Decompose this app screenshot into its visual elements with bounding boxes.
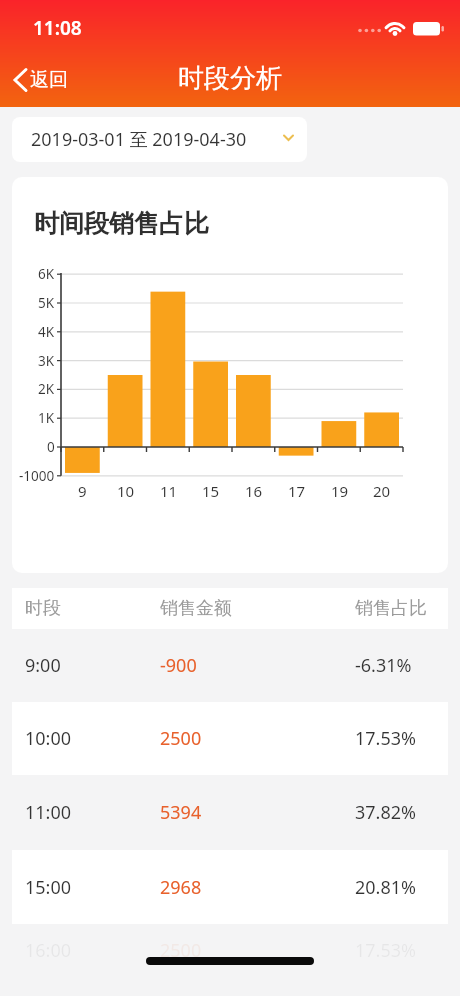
staticText: 11: [160, 481, 178, 501]
staticText: 10:00: [25, 726, 72, 751]
staticText: 17.53%: [355, 938, 416, 963]
button[interactable]: [12, 702, 448, 775]
staticText: 15:00: [25, 875, 72, 900]
staticText: 时段: [25, 597, 61, 620]
staticText: 37.82%: [355, 800, 416, 825]
staticText: 时间段销售占比: [34, 208, 209, 239]
staticText: 2500: [160, 726, 202, 751]
staticText: 11:00: [25, 800, 72, 825]
staticText: 5394: [160, 800, 202, 825]
staticText: 2968: [160, 875, 202, 900]
button[interactable]: 2019-03-01 至 2019-04-30: [12, 117, 307, 162]
staticText: 销售金额: [160, 597, 232, 620]
staticText: 2019-03-01 至 2019-04-30: [31, 127, 247, 152]
staticText: 19: [331, 481, 349, 501]
staticText: 销售占比: [355, 597, 427, 620]
staticText: 16:00: [25, 938, 72, 963]
staticText: 17: [288, 481, 306, 501]
staticText: 20: [373, 481, 391, 501]
staticText: 20.81%: [355, 875, 416, 900]
staticText: 3K: [38, 352, 55, 370]
staticText: 1K: [38, 409, 55, 427]
staticText: 2K: [38, 380, 55, 398]
staticText: 17.53%: [355, 726, 416, 751]
staticText: 5K: [38, 294, 55, 312]
button[interactable]: [12, 850, 448, 924]
staticText: 9:00: [25, 653, 61, 678]
staticText: -6.31%: [355, 653, 412, 678]
staticText: 15: [202, 481, 220, 501]
staticText: 10: [117, 481, 135, 501]
staticText: -1000: [19, 467, 55, 485]
staticText: -900: [160, 653, 197, 678]
staticText: 时段分析: [178, 62, 282, 95]
staticText: 9: [78, 481, 87, 501]
staticText: 返回: [30, 68, 68, 92]
staticText: 4K: [38, 323, 55, 341]
button[interactable]: [12, 924, 448, 996]
staticText: 6K: [38, 265, 55, 283]
button[interactable]: [12, 629, 448, 702]
staticText: 16: [245, 481, 263, 501]
button[interactable]: [12, 775, 448, 850]
staticText: 0: [47, 438, 55, 456]
staticText: 11:08: [33, 15, 82, 41]
staticText: 2500: [160, 938, 202, 963]
button[interactable]: 返回: [6, 62, 92, 98]
